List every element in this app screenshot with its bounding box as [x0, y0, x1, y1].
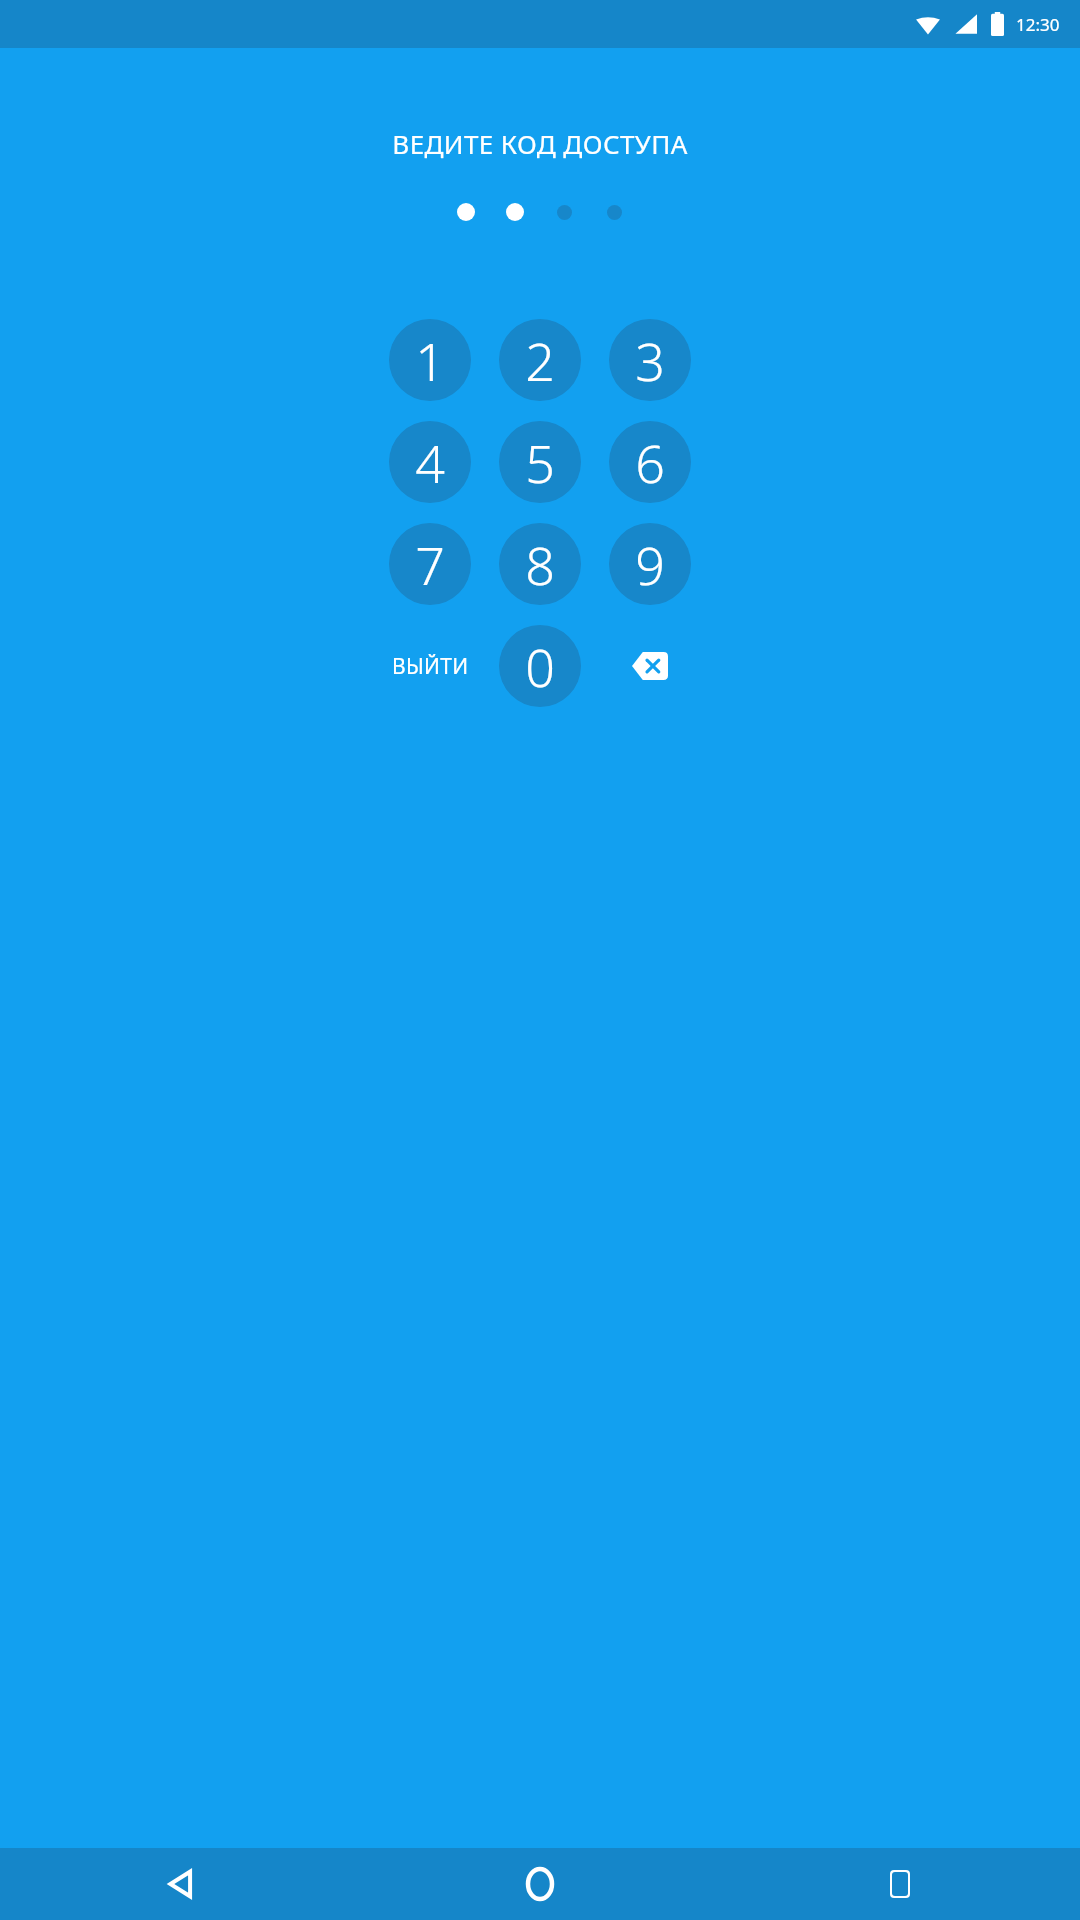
staticText: 9 — [635, 529, 665, 600]
staticText: 12:30 — [1016, 13, 1060, 36]
staticText: 4 — [415, 427, 445, 498]
staticText: 6 — [635, 427, 665, 498]
staticText: 7 — [415, 529, 445, 600]
staticText: 2 — [525, 325, 555, 396]
button[interactable]: Recent apps — [720, 1848, 1080, 1920]
button[interactable]: 0 — [499, 625, 581, 707]
button[interactable]: 6 — [609, 421, 691, 503]
button[interactable]: 5 — [499, 421, 581, 503]
staticText: 3 — [635, 325, 665, 396]
button[interactable]: 9 — [609, 523, 691, 605]
button[interactable]: Back — [0, 1848, 360, 1920]
button[interactable]: 7 — [389, 523, 471, 605]
button[interactable]: 8 — [499, 523, 581, 605]
button[interactable]: 3 — [609, 319, 691, 401]
staticText: ВЫЙТИ — [392, 652, 469, 681]
staticText: 5 — [525, 427, 555, 498]
staticText: 8 — [525, 529, 555, 600]
staticText: ВЕДИТЕ КОД ДОСТУПА — [392, 126, 688, 161]
button[interactable]: Backspace — [595, 625, 705, 707]
button[interactable]: ВЫЙТИ — [375, 625, 485, 707]
staticText: 0 — [525, 631, 555, 702]
button[interactable]: Home — [360, 1848, 720, 1920]
button[interactable]: 1 — [389, 319, 471, 401]
button[interactable]: 4 — [389, 421, 471, 503]
button[interactable]: 2 — [499, 319, 581, 401]
staticText: 1 — [415, 325, 445, 396]
